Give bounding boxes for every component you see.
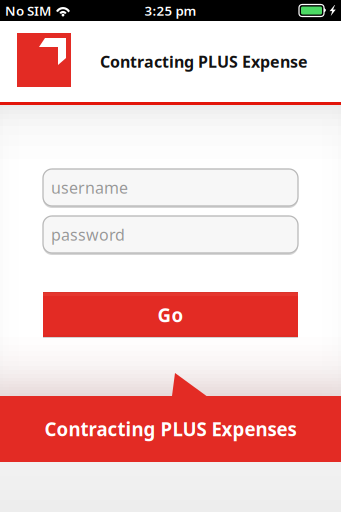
staticText: Go xyxy=(157,303,183,327)
button[interactable]: username xyxy=(43,169,298,208)
button[interactable]: password xyxy=(43,216,298,255)
staticText: password xyxy=(51,224,125,245)
staticText: No SIM xyxy=(5,2,51,19)
button[interactable]: Go xyxy=(43,292,298,338)
staticText: Contracting PLUS Expenses xyxy=(44,417,296,441)
staticText: 3:25 pm xyxy=(144,2,196,19)
staticText: Contracting PLUS Expense xyxy=(100,51,308,72)
staticText: username xyxy=(51,177,128,198)
